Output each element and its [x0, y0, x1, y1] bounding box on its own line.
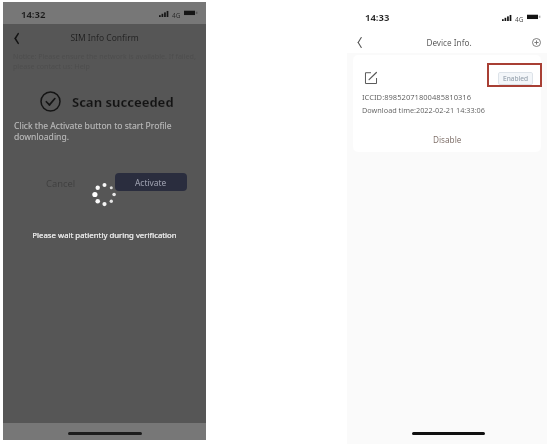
staticText: Activate [135, 177, 167, 188]
button[interactable]: Disable [353, 131, 541, 147]
staticText: Scan succeeded [72, 93, 174, 111]
button[interactable]: Rename [365, 72, 377, 84]
staticText: Please wait patiently during verificatio… [3, 230, 206, 241]
staticText: 4G [515, 15, 524, 22]
staticText: ICCID:89852071800485810316 [362, 92, 472, 102]
staticText: Enabled [503, 74, 528, 83]
button[interactable]: Enabled [498, 72, 533, 85]
button[interactable]: Back [350, 33, 369, 52]
staticText: downloading. [14, 131, 70, 143]
staticText: Cancel [46, 177, 76, 190]
staticText: Disable [433, 134, 462, 145]
button[interactable]: Add [527, 33, 546, 52]
staticText: Click the Activate button to start Profi… [14, 120, 172, 132]
staticText: 14:32 [21, 8, 46, 21]
staticText: SIM Info Confirm [3, 32, 206, 44]
staticText: 14:33 [365, 11, 390, 24]
staticText: Device Info. [349, 37, 549, 48]
staticText: Download time:2022-02-21 14:33:06 [362, 105, 485, 115]
button[interactable]: Cancel [38, 172, 84, 195]
button[interactable]: Back [7, 29, 25, 47]
staticText: 4G [172, 11, 181, 18]
button[interactable]: Activate [115, 173, 187, 191]
